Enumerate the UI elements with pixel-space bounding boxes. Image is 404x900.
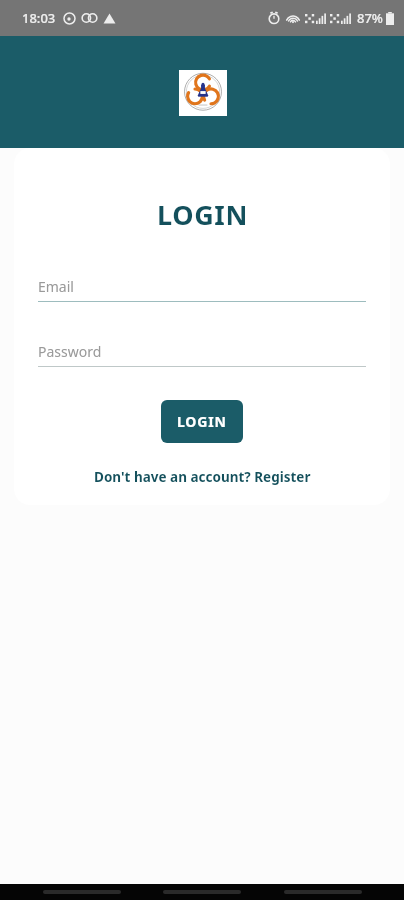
staticText: LOGIN bbox=[177, 412, 227, 431]
staticText: Don't have an account? Register bbox=[94, 468, 311, 486]
button[interactable]: Don't have an account? Register bbox=[88, 464, 317, 490]
staticText: 18:03 bbox=[22, 9, 56, 27]
staticText: Email bbox=[38, 277, 74, 296]
staticText: Password bbox=[38, 342, 102, 361]
button[interactable]: Password bbox=[38, 342, 366, 367]
button[interactable]: Email bbox=[38, 277, 366, 302]
staticText: 87% bbox=[357, 9, 383, 27]
staticText: LOGIN bbox=[157, 196, 248, 233]
button[interactable]: LOGIN bbox=[161, 400, 243, 443]
